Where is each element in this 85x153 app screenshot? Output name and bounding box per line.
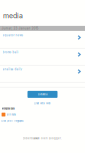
- button[interactable]: bromo bali: [0, 48, 85, 65]
- staticText: Lihat profil lengkapku: [1, 119, 23, 122]
- staticText: Jumat, 23 Januari 2015: [2, 27, 39, 30]
- staticText: Lihat versi web: [34, 102, 51, 105]
- staticText: media: [3, 11, 23, 20]
- button[interactable]: ulin nuha: [7, 113, 16, 116]
- button[interactable]: analisa daily: [0, 65, 85, 82]
- button[interactable]: Lihat versi web: [34, 102, 51, 105]
- staticText: bromo bali: [2, 50, 18, 54]
- staticText: equator news: [2, 33, 22, 37]
- staticText: ulin nuha: [7, 113, 16, 116]
- staticText: Beranda: [38, 93, 47, 96]
- staticText: Diberdayakan oleh Blogger.: [23, 137, 62, 140]
- button[interactable]: equator news: [0, 31, 85, 48]
- staticText: Mengenai Saya: [2, 107, 15, 110]
- button[interactable]: Beranda: [27, 91, 57, 98]
- staticText: analisa daily: [2, 67, 22, 71]
- button[interactable]: Lihat profil lengkapku: [0, 119, 23, 122]
